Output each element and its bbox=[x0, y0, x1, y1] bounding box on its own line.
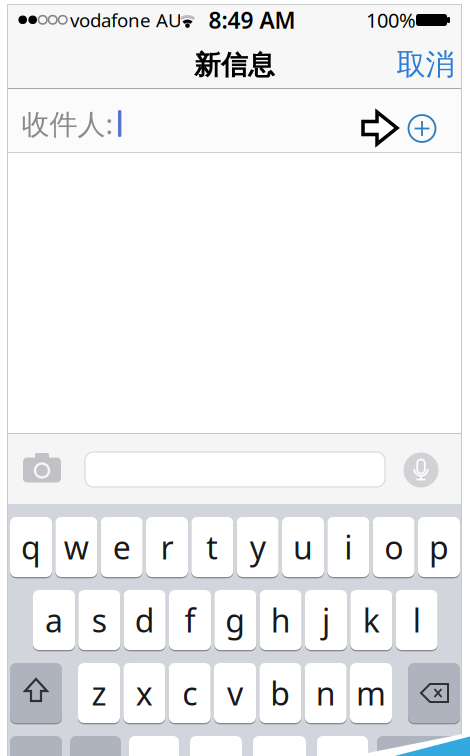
button[interactable]: 拼音 bbox=[317, 736, 368, 756]
staticText: t bbox=[206, 526, 218, 568]
button[interactable]: f bbox=[169, 590, 211, 650]
button[interactable]: w bbox=[55, 517, 97, 577]
button[interactable]: l bbox=[396, 590, 438, 650]
button[interactable]: 添加联系人 bbox=[408, 115, 435, 142]
button[interactable]: Shift bbox=[10, 663, 62, 723]
staticText: q bbox=[21, 526, 41, 568]
staticText: 收件人: bbox=[21, 105, 113, 142]
button[interactable]: 123 bbox=[10, 736, 62, 756]
button[interactable]: 取消 bbox=[396, 46, 454, 82]
button[interactable]: 相机 bbox=[22, 453, 62, 483]
button[interactable]: q bbox=[10, 517, 52, 577]
staticText: d bbox=[135, 599, 155, 641]
button[interactable]: g bbox=[214, 590, 256, 650]
button[interactable]: j bbox=[305, 590, 347, 650]
button[interactable]: n bbox=[305, 663, 347, 723]
staticText: p bbox=[429, 526, 449, 568]
button[interactable]: m bbox=[350, 663, 392, 723]
button[interactable]: v bbox=[214, 663, 256, 723]
staticText: g bbox=[225, 599, 245, 641]
button[interactable]: k bbox=[350, 590, 392, 650]
staticText: n bbox=[316, 672, 336, 714]
staticText: k bbox=[363, 599, 380, 641]
staticText: s bbox=[92, 599, 107, 641]
staticText: h bbox=[271, 599, 291, 641]
button[interactable]: t bbox=[191, 517, 233, 577]
staticText: 8:49 AM bbox=[208, 5, 295, 35]
button[interactable]: p bbox=[418, 517, 460, 577]
button[interactable]: z bbox=[78, 663, 120, 723]
button[interactable]: e bbox=[101, 517, 143, 577]
button[interactable]: c bbox=[169, 663, 211, 723]
button[interactable]: d bbox=[124, 590, 166, 650]
staticText: r bbox=[160, 526, 173, 568]
button[interactable]: i bbox=[327, 517, 369, 577]
staticText: u bbox=[293, 526, 313, 568]
button[interactable]: 删除 bbox=[408, 663, 460, 723]
button[interactable]: u bbox=[282, 517, 324, 577]
staticText: l bbox=[413, 599, 421, 641]
staticText: f bbox=[184, 599, 195, 641]
button[interactable]: 句号 bbox=[253, 736, 306, 756]
button[interactable]: a bbox=[33, 590, 75, 650]
staticText: z bbox=[91, 672, 106, 714]
staticText: o bbox=[384, 526, 403, 568]
button[interactable]: s bbox=[78, 590, 120, 650]
staticText: m bbox=[356, 672, 386, 714]
button[interactable]: r bbox=[146, 517, 188, 577]
button[interactable]: o bbox=[373, 517, 415, 577]
button[interactable]: 顿号 bbox=[129, 736, 179, 756]
staticText: j bbox=[322, 599, 330, 641]
staticText: a bbox=[45, 599, 63, 641]
staticText: vodafone AU bbox=[70, 8, 182, 32]
button[interactable]: 信息输入框 bbox=[85, 452, 385, 487]
staticText: 取消 bbox=[396, 46, 454, 82]
staticText: e bbox=[113, 526, 131, 568]
staticText: w bbox=[64, 526, 89, 568]
button[interactable]: y bbox=[237, 517, 279, 577]
staticText: 100% bbox=[366, 7, 416, 33]
staticText: i bbox=[344, 526, 352, 568]
button[interactable]: 语音输入 bbox=[403, 452, 438, 487]
staticText: y bbox=[250, 526, 266, 568]
button[interactable]: x bbox=[123, 663, 165, 723]
staticText: v bbox=[227, 672, 243, 714]
button[interactable]: 空格 bbox=[190, 736, 242, 756]
button[interactable]: 换行 bbox=[377, 736, 460, 756]
button[interactable]: b bbox=[259, 663, 301, 723]
staticText: x bbox=[136, 672, 153, 714]
staticText: b bbox=[270, 672, 290, 714]
staticText: c bbox=[182, 672, 197, 714]
button[interactable]: 下一个键盘 bbox=[70, 736, 121, 756]
staticText: 新信息 bbox=[194, 49, 275, 81]
button[interactable]: h bbox=[260, 590, 302, 650]
